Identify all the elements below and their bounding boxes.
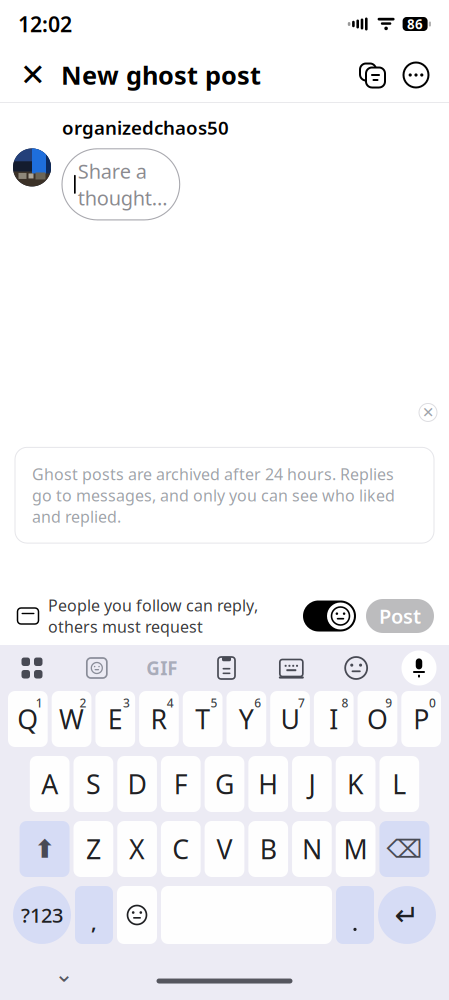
button[interactable]: A xyxy=(30,756,70,812)
button[interactable]: F xyxy=(161,756,201,812)
button[interactable]: Post xyxy=(366,599,434,633)
button[interactable]: Stickers xyxy=(75,648,119,688)
button[interactable]: Dismiss xyxy=(419,403,437,421)
staticText: 2 xyxy=(79,695,86,711)
staticText: C xyxy=(172,831,189,867)
button[interactable]: Clipboard xyxy=(204,648,248,688)
staticText: 7 xyxy=(298,695,305,711)
staticText: F xyxy=(174,766,188,802)
staticText: ?123 xyxy=(21,902,63,928)
staticText: Q xyxy=(17,701,38,737)
staticText: Z xyxy=(86,831,101,867)
staticText: E xyxy=(108,701,123,737)
staticText: GIF xyxy=(146,656,177,680)
staticText: 4 xyxy=(167,695,174,711)
staticText: A xyxy=(41,766,58,802)
staticText: S xyxy=(86,766,101,802)
button[interactable]: D xyxy=(117,756,157,812)
staticText: Share a thought… xyxy=(78,158,168,211)
staticText: D xyxy=(128,766,147,802)
staticText: N xyxy=(302,831,322,867)
staticText: B xyxy=(260,831,277,867)
button[interactable]: 3 xyxy=(95,691,135,747)
staticText: J xyxy=(308,766,315,802)
button[interactable]: More options xyxy=(399,58,433,92)
staticText: W xyxy=(59,701,84,737)
staticText: 0 xyxy=(429,695,436,711)
staticText: M xyxy=(344,831,368,867)
button[interactable]: 1 xyxy=(8,691,48,747)
button[interactable]: Hide keyboard xyxy=(44,960,84,988)
staticText: 6 xyxy=(254,695,261,711)
button[interactable]: Drafts xyxy=(355,58,389,92)
button[interactable]: Comma xyxy=(75,886,113,944)
button[interactable]: 2 xyxy=(52,691,91,747)
staticText: ↵ xyxy=(394,898,419,932)
staticText: O xyxy=(367,701,388,737)
staticText: ⌄ xyxy=(54,961,73,987)
staticText: ✕ xyxy=(20,58,46,92)
staticText: 12:02 xyxy=(18,10,72,38)
button[interactable]: Voice input xyxy=(399,648,439,688)
button[interactable]: C xyxy=(161,821,201,877)
staticText: G xyxy=(215,766,234,802)
button[interactable]: J xyxy=(292,756,332,812)
button[interactable]: 5 xyxy=(183,691,222,747)
button[interactable]: Shift xyxy=(20,821,70,877)
button[interactable]: B xyxy=(248,821,288,877)
button[interactable]: 7 xyxy=(270,691,310,747)
staticText: People you follow can reply, others must… xyxy=(48,595,258,637)
button[interactable]: Return xyxy=(378,886,436,944)
button[interactable]: X xyxy=(117,821,157,877)
button[interactable]: 9 xyxy=(358,691,397,747)
button[interactable]: M xyxy=(336,821,375,877)
button[interactable]: 0 xyxy=(401,691,441,747)
staticText: New ghost post xyxy=(61,58,261,92)
button[interactable]: G xyxy=(205,756,244,812)
staticText: I xyxy=(329,701,338,737)
button[interactable]: Backspace xyxy=(379,821,429,877)
staticText: X xyxy=(129,831,145,867)
staticText: 9 xyxy=(385,695,392,711)
button[interactable]: Emoji xyxy=(117,886,157,944)
staticText: L xyxy=(392,766,406,802)
staticText: Ghost posts are archived after 24 hours.… xyxy=(32,463,395,527)
staticText: 8 xyxy=(342,695,349,711)
staticText: ✕ xyxy=(422,404,434,421)
staticText: ⌫ xyxy=(386,835,422,863)
button[interactable]: H xyxy=(248,756,288,812)
staticText: organizedchaos50 xyxy=(62,115,229,140)
button[interactable]: Ghost replies toggle xyxy=(303,600,356,631)
button[interactable]: N xyxy=(292,821,332,877)
staticText: R xyxy=(150,701,167,737)
button[interactable]: Keyboard features xyxy=(10,648,54,688)
button[interactable]: 8 xyxy=(314,691,354,747)
staticText: Post xyxy=(379,603,421,629)
staticText: ⬆ xyxy=(34,835,55,863)
staticText: , xyxy=(91,908,97,935)
button[interactable]: S xyxy=(74,756,113,812)
button[interactable]: 6 xyxy=(226,691,266,747)
button[interactable]: K xyxy=(336,756,375,812)
button[interactable]: L xyxy=(379,756,419,812)
button[interactable]: Keyboard settings xyxy=(269,648,313,688)
button[interactable]: Emoji xyxy=(334,648,378,688)
button[interactable]: Share a thought… xyxy=(62,149,180,220)
button[interactable]: V xyxy=(205,821,244,877)
staticText: 1 xyxy=(36,695,43,711)
staticText: 5 xyxy=(210,695,217,711)
button[interactable]: Z xyxy=(74,821,113,877)
button[interactable]: GIF xyxy=(140,648,184,688)
staticText: V xyxy=(216,831,232,867)
button[interactable]: 4 xyxy=(139,691,179,747)
staticText: P xyxy=(413,701,429,737)
staticText: 86 xyxy=(407,15,423,33)
staticText: Y xyxy=(239,701,254,737)
button[interactable]: Close xyxy=(16,58,50,92)
staticText: U xyxy=(281,701,300,737)
staticText: K xyxy=(347,766,364,802)
button[interactable]: Period xyxy=(336,886,374,944)
staticText: H xyxy=(258,766,278,802)
button[interactable]: Symbols xyxy=(13,886,71,944)
